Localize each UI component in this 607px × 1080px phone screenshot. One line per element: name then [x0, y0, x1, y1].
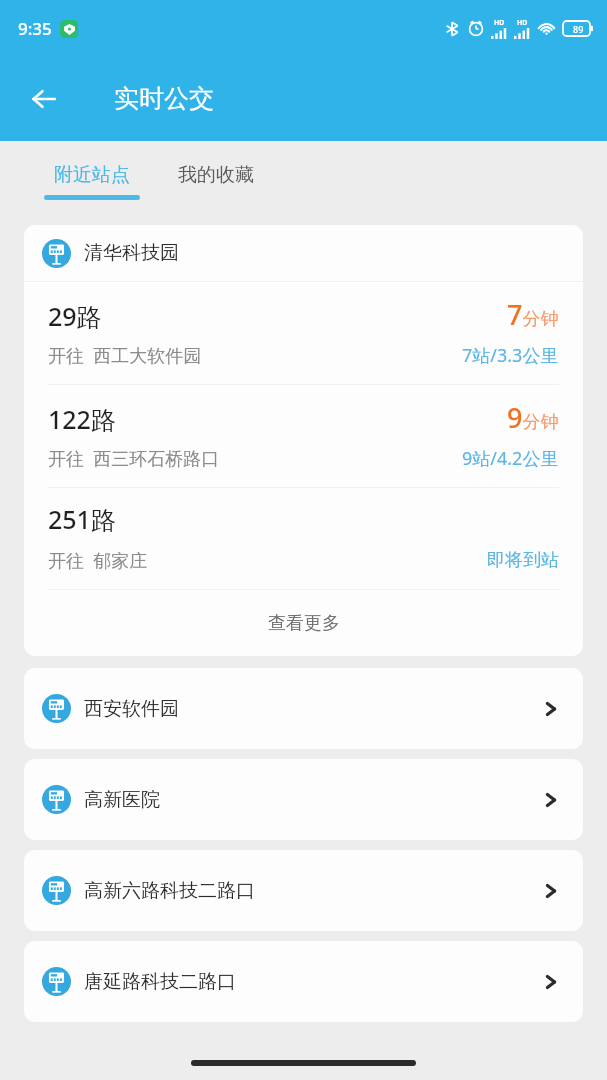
staticText: 9:35 — [18, 17, 52, 40]
staticText: 即将到站 — [487, 549, 559, 572]
staticText: 开往 西工大软件园 — [48, 343, 462, 368]
button[interactable]: 122路 — [24, 385, 583, 487]
button[interactable]: Back — [14, 69, 74, 129]
staticText: 西安软件园 — [84, 697, 541, 721]
button[interactable]: 29路 — [24, 282, 583, 384]
button[interactable]: 我的收藏 — [178, 163, 254, 187]
staticText: 附近站点 — [54, 163, 130, 187]
staticText: 查看更多 — [268, 612, 340, 635]
staticText: 122路 — [48, 402, 507, 436]
staticText: 清华科技园 — [84, 241, 179, 265]
staticText: 7站/3.3公里 — [462, 343, 559, 368]
staticText: 251路 — [48, 502, 559, 536]
staticText: 9站/4.2公里 — [462, 446, 559, 471]
staticText: 开往 西三环石桥路口 — [48, 446, 462, 471]
staticText: 高新六路科技二路口 — [84, 879, 541, 903]
staticText: 9分钟 — [507, 399, 559, 436]
staticText: 实时公交 — [114, 83, 214, 114]
staticText: 开往 郁家庄 — [48, 548, 487, 573]
button[interactable]: 高新六路科技二路口 — [24, 850, 583, 931]
staticText: 29路 — [48, 299, 507, 333]
staticText: 89 — [573, 23, 584, 35]
button[interactable]: 251路 — [24, 488, 583, 589]
button[interactable]: 清华科技园 — [24, 225, 583, 281]
staticText: HD — [517, 18, 528, 28]
staticText: 高新医院 — [84, 788, 541, 812]
staticText: 我的收藏 — [178, 163, 254, 187]
button[interactable]: 查看更多 — [24, 590, 583, 656]
staticText: HD — [494, 18, 505, 28]
button[interactable]: 唐延路科技二路口 — [24, 941, 583, 1022]
button[interactable]: 附近站点 — [44, 163, 140, 200]
staticText: 唐延路科技二路口 — [84, 970, 541, 994]
staticText: 7分钟 — [507, 296, 559, 333]
button[interactable]: 西安软件园 — [24, 668, 583, 749]
button[interactable]: 高新医院 — [24, 759, 583, 840]
